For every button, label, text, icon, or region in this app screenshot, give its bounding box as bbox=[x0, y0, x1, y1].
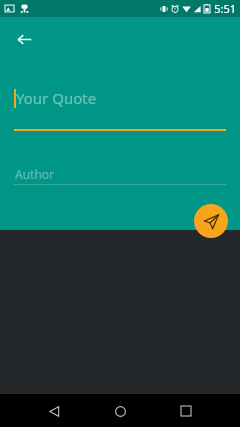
staticText: Your Quote bbox=[16, 88, 97, 108]
staticText: Author bbox=[15, 166, 55, 182]
button[interactable]: Back bbox=[9, 24, 39, 54]
button[interactable]: Recent apps bbox=[172, 397, 200, 425]
button[interactable]: Send bbox=[194, 204, 228, 238]
button[interactable]: Back bbox=[40, 397, 68, 425]
button[interactable]: Author bbox=[14, 166, 226, 185]
button[interactable]: Your Quote bbox=[14, 86, 226, 131]
button[interactable]: Home bbox=[106, 397, 134, 425]
staticText: 5:51 bbox=[214, 1, 236, 16]
